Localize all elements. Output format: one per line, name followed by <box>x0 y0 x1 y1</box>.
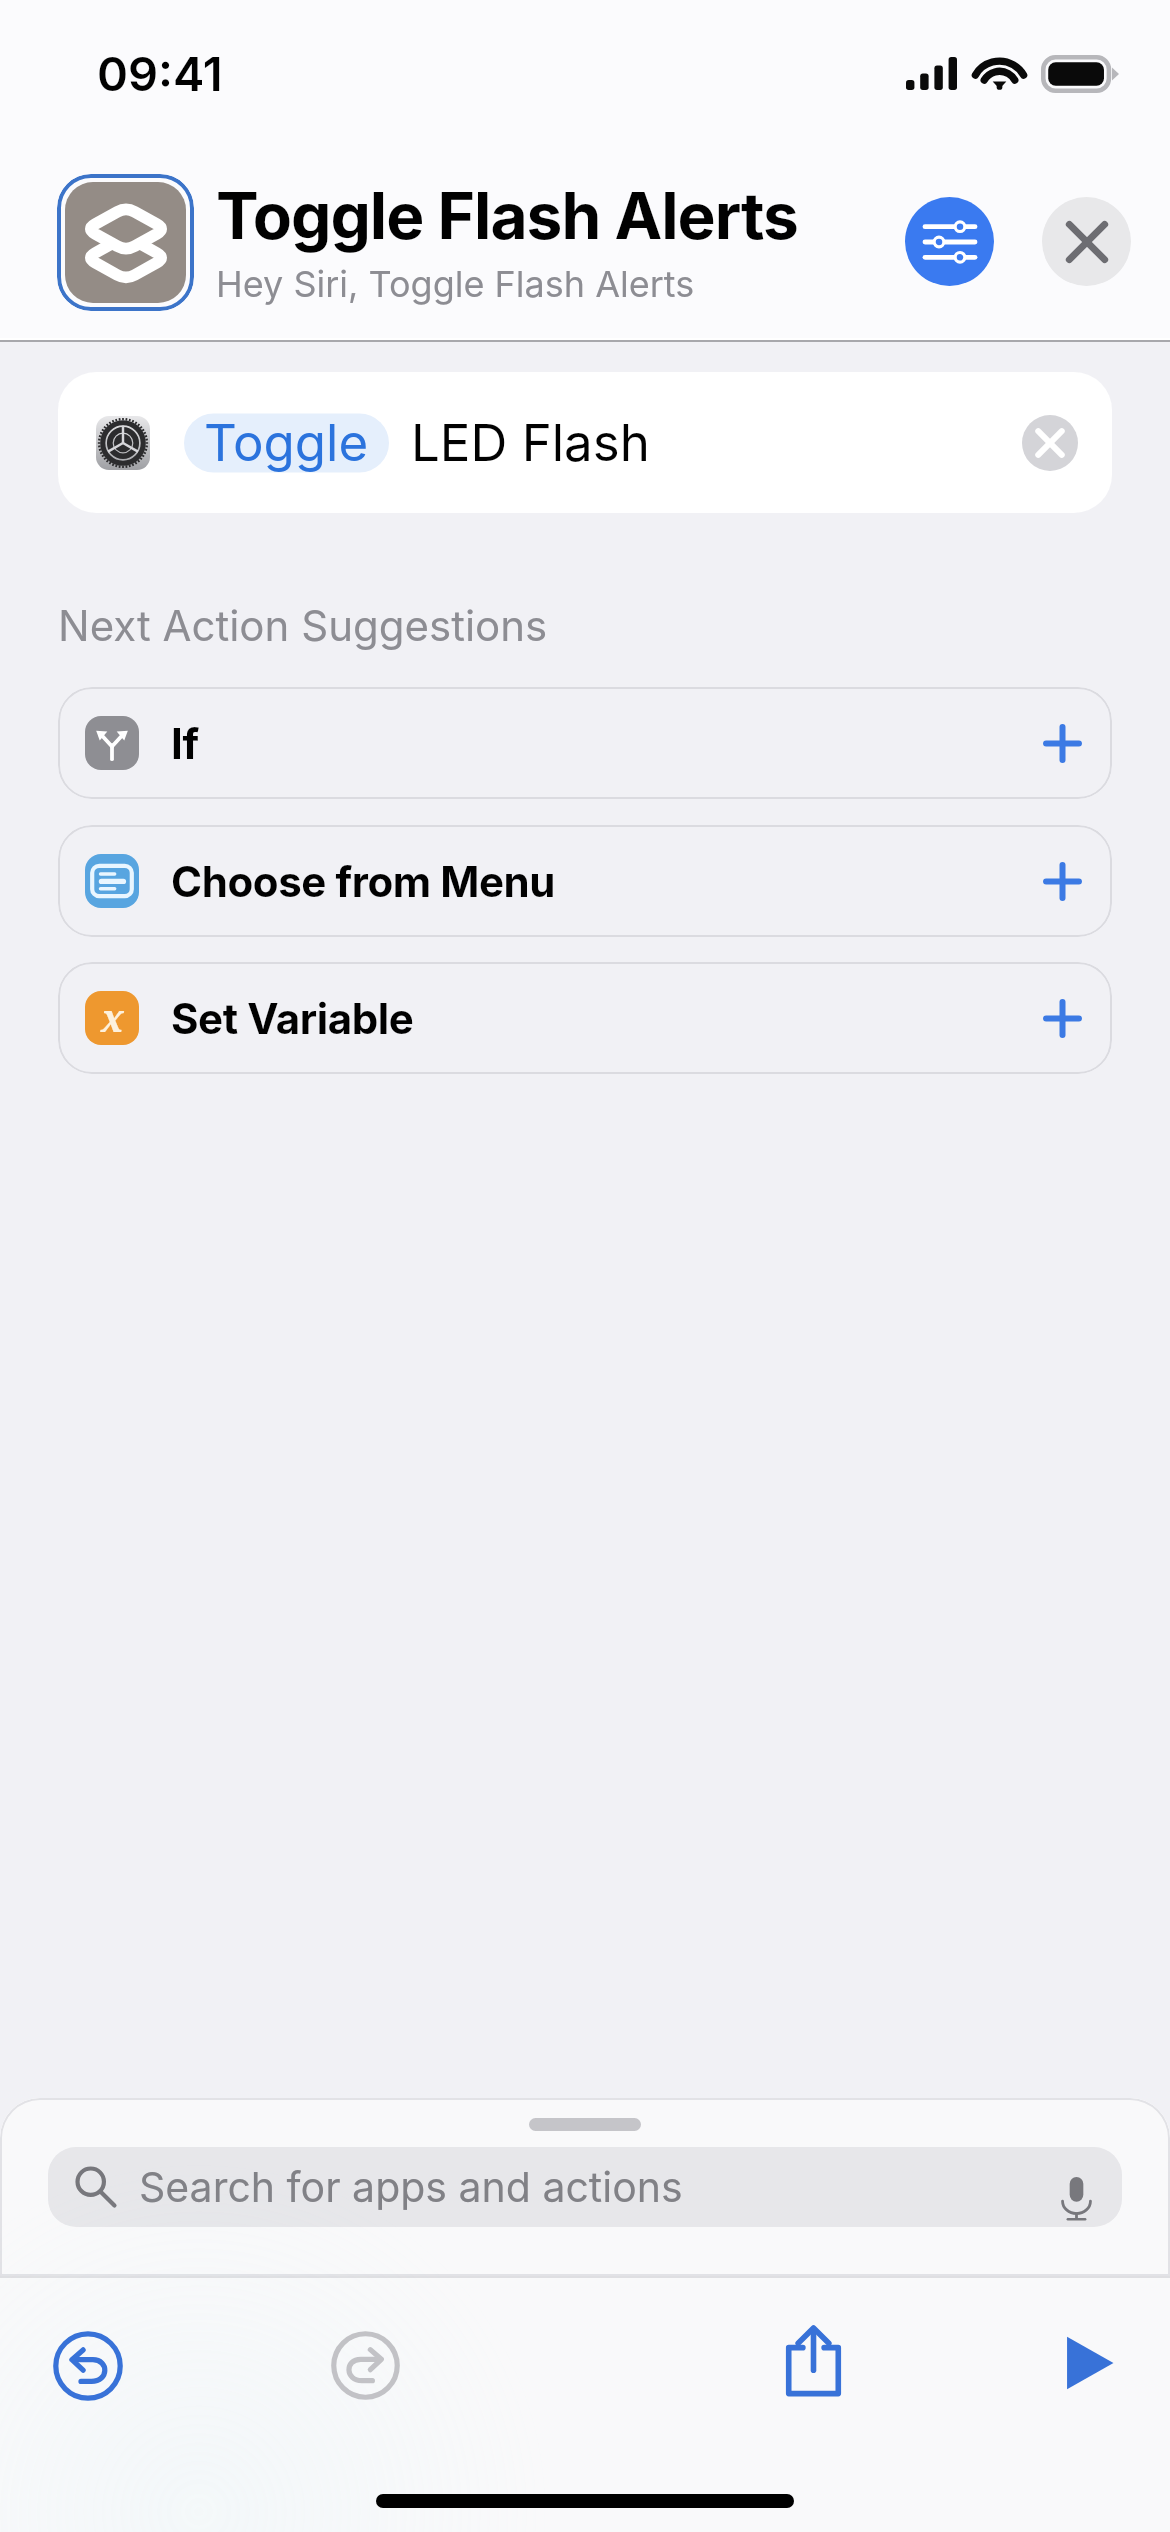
button[interactable]: Toggle <box>58 372 1112 513</box>
button[interactable]: Remove action <box>1022 415 1078 471</box>
staticText: x <box>101 991 124 1043</box>
button[interactable]: Search for apps and actions <box>48 2147 1122 2227</box>
button[interactable]: Choose from Menu <box>58 825 1112 937</box>
staticText: Toggle Flash Alerts <box>216 177 798 254</box>
staticText: Next Action Suggestions <box>58 600 548 651</box>
button[interactable]: Add Choose from Menu <box>1023 842 1101 920</box>
button[interactable]: Shortcut settings <box>905 197 994 286</box>
button[interactable]: x <box>58 962 1112 1074</box>
button[interactable]: Add If <box>1023 704 1101 782</box>
button[interactable]: Run <box>1039 2313 1139 2413</box>
staticText: Choose from Menu <box>171 856 556 907</box>
staticText: Search for apps and actions <box>139 2162 683 2212</box>
button[interactable]: If <box>58 687 1112 799</box>
button[interactable]: Add Set Variable <box>1023 979 1101 1057</box>
button[interactable]: Undo <box>39 2317 137 2415</box>
staticText: If <box>171 718 199 769</box>
button[interactable]: Share <box>763 2311 863 2411</box>
staticText: 09:41 <box>97 45 223 102</box>
button[interactable]: Redo <box>316 2316 414 2414</box>
button[interactable]: Close <box>1042 197 1131 286</box>
staticText: Toggle <box>204 412 369 474</box>
staticText: Hey Siri, Toggle Flash Alerts <box>216 262 695 306</box>
staticText: Set Variable <box>171 993 414 1044</box>
staticText: LED Flash <box>411 412 650 474</box>
